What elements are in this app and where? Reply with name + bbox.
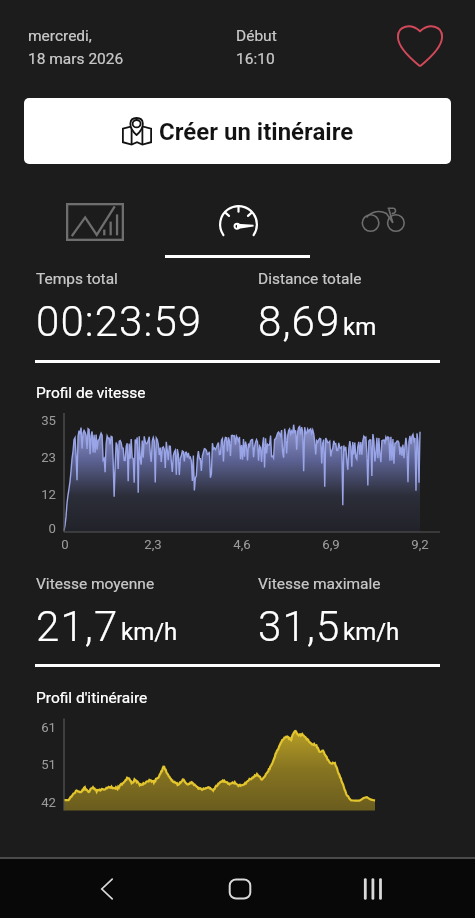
- staticText: Début: [236, 27, 277, 45]
- staticText: 0: [35, 537, 95, 552]
- staticText: 18 mars 2026: [28, 50, 124, 68]
- button[interactable]: Statistics tab: [0, 180, 158, 260]
- button[interactable]: Créer un itinéraire: [24, 98, 451, 164]
- staticText: Profil d'itinéraire: [36, 689, 148, 707]
- staticText: Vitesse moyenne: [36, 575, 155, 593]
- staticText: 31,5: [258, 602, 341, 651]
- staticText: Temps total: [36, 270, 118, 288]
- staticText: 0: [0, 521, 56, 536]
- staticText: 42: [0, 795, 56, 810]
- staticText: Vitesse maximale: [258, 575, 381, 593]
- staticText: 8,69: [258, 297, 341, 346]
- staticText: 2,3: [123, 537, 183, 552]
- staticText: km/h: [121, 618, 178, 646]
- staticText: 00:23:59: [36, 297, 203, 346]
- staticText: km/h: [343, 618, 400, 646]
- staticText: Distance totale: [258, 270, 362, 288]
- staticText: mercredi,: [28, 27, 92, 45]
- button[interactable]: Speed tab: [158, 180, 317, 260]
- staticText: Créer un itinéraire: [159, 118, 354, 146]
- button[interactable]: Home: [214, 859, 266, 918]
- staticText: 9,2: [390, 537, 450, 552]
- staticText: 16:10: [236, 50, 275, 68]
- button[interactable]: Favorite: [394, 19, 446, 71]
- staticText: 12: [0, 487, 56, 502]
- button[interactable]: Recent apps: [347, 859, 399, 918]
- staticText: 35: [0, 413, 56, 428]
- staticText: 61: [0, 720, 56, 735]
- staticText: 4,6: [212, 537, 272, 552]
- staticText: 21,7: [36, 602, 119, 651]
- staticText: Profil de vitesse: [36, 384, 146, 402]
- staticText: km: [343, 313, 377, 341]
- button[interactable]: Activity tab: [317, 180, 475, 260]
- button[interactable]: Back: [81, 859, 133, 918]
- staticText: 23: [0, 450, 56, 465]
- staticText: 6,9: [301, 537, 361, 552]
- staticText: 51: [0, 757, 56, 772]
